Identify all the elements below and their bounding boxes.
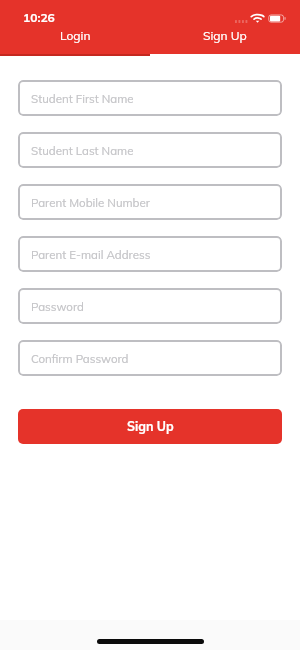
button[interactable]: Student First Name (18, 80, 282, 116)
button[interactable]: Parent E-mail Address (18, 236, 282, 272)
other: Cellular signal (235, 20, 249, 23)
staticText: Password (31, 299, 84, 313)
staticText: 10:26 (23, 10, 55, 25)
button[interactable]: Student Last Name (18, 132, 282, 168)
staticText: Sign Up (203, 28, 247, 43)
button[interactable]: Confirm Password (18, 340, 282, 376)
staticText: Login (60, 28, 91, 43)
button[interactable]: Login (0, 28, 150, 54)
button[interactable]: Parent Mobile Number (18, 184, 282, 220)
other: Battery (268, 14, 287, 23)
staticText: Student First Name (31, 91, 134, 105)
staticText: Confirm Password (31, 351, 129, 365)
other: Wi-Fi (251, 14, 265, 24)
button[interactable]: Password (18, 288, 282, 324)
button[interactable]: Sign Up (18, 409, 282, 444)
staticText: Sign Up (127, 419, 174, 435)
staticText: Student Last Name (31, 143, 134, 157)
staticText: Parent Mobile Number (31, 195, 150, 209)
button[interactable]: Sign Up (150, 28, 300, 54)
staticText: Parent E-mail Address (31, 247, 151, 261)
